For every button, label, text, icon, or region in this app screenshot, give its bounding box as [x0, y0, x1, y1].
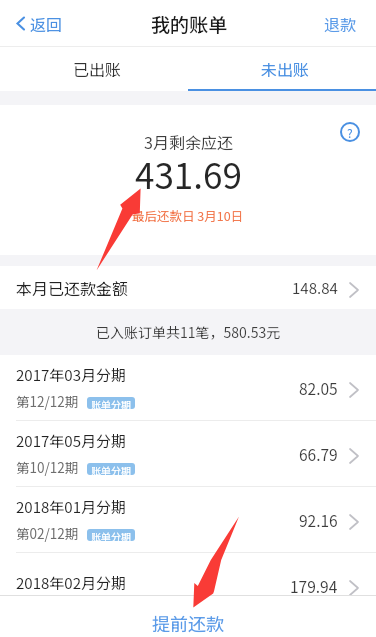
staticText: 第10/12期	[16, 457, 79, 477]
staticText: 账单分期	[91, 397, 131, 409]
staticText: 431.69	[135, 148, 242, 199]
staticText: 179.94	[290, 575, 338, 597]
staticText: 本月已还款金额	[16, 276, 129, 299]
staticText: 92.16	[299, 509, 338, 531]
staticText: 已出账	[73, 57, 122, 80]
staticText: 第12/12期	[16, 391, 79, 411]
staticText: 82.05	[299, 377, 338, 399]
button[interactable]: 已出账	[0, 47, 188, 91]
button[interactable]: 2018年01月分期	[0, 487, 376, 553]
button[interactable]: 本月已还款金额	[0, 266, 376, 309]
staticText: 未出账	[261, 57, 310, 80]
button[interactable]: 退款	[305, 4, 376, 43]
staticText: 2018年02月分期	[16, 572, 126, 594]
staticText: 已入账订单共11笔，580.53元	[96, 322, 281, 342]
staticText: 账单分期	[91, 463, 131, 475]
button[interactable]: 2017年05月分期	[0, 421, 376, 487]
button[interactable]: 2017年03月分期	[0, 355, 376, 421]
staticText: 退款	[324, 12, 357, 35]
staticText: 提前还款	[152, 610, 224, 636]
button[interactable]: 返回	[0, 4, 73, 43]
staticText: 148.84	[292, 277, 338, 299]
staticText: 账单分期	[91, 529, 131, 541]
staticText: 我的账单	[151, 10, 228, 38]
staticText: 66.79	[299, 443, 338, 465]
staticText: 2017年05月分期	[16, 430, 126, 452]
staticText: 返回	[30, 12, 63, 35]
staticText: 2018年01月分期	[16, 496, 126, 518]
button[interactable]: 2018年02月分期	[0, 553, 376, 619]
button[interactable]: Help	[340, 122, 360, 142]
staticText: 最后还款日 3月10日	[132, 206, 244, 224]
staticText: 第02/12期	[16, 523, 79, 543]
button[interactable]: 提前还款	[0, 596, 376, 637]
staticText: 2017年03月分期	[16, 364, 126, 386]
staticText: 3月剩余应还	[144, 130, 233, 153]
button[interactable]: 未出账	[188, 47, 376, 91]
staticText: ?	[347, 124, 353, 141]
